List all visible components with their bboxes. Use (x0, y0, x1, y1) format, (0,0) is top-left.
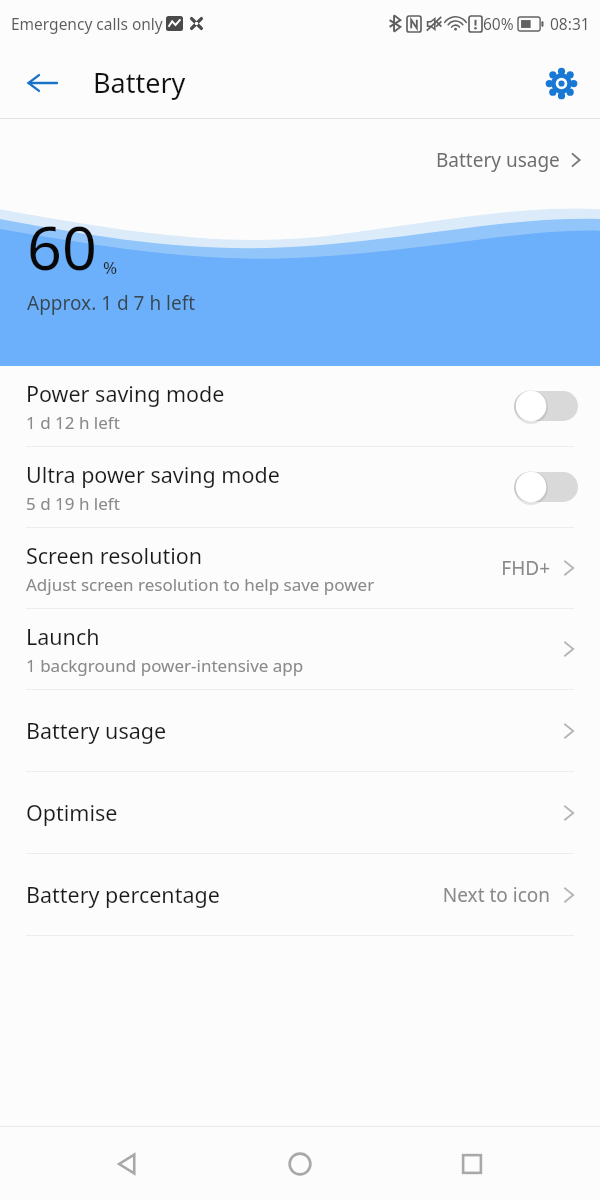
staticText: 08:31 (550, 13, 590, 34)
staticText: Next to icon (442, 882, 550, 908)
staticText: Approx. 1 d 7 h left (27, 290, 196, 316)
staticText: Power saving mode (26, 379, 225, 408)
button[interactable]: Toggle (514, 389, 578, 423)
staticText: Launch (26, 622, 100, 651)
staticText: Battery percentage (26, 880, 220, 909)
button[interactable]: Battery usage (418, 137, 600, 183)
staticText: Emergency calls only (11, 13, 163, 34)
staticText: 1 background power-intensive app (26, 654, 304, 677)
button[interactable]: Home (256, 1127, 344, 1200)
button[interactable]: Screen resolution (0, 528, 600, 608)
staticText: Optimise (26, 798, 118, 827)
button[interactable]: Launch (0, 609, 600, 689)
staticText: 1 d 12 h left (26, 411, 120, 434)
button[interactable]: Ultra power saving mode (0, 447, 600, 527)
button[interactable]: Toggle (514, 470, 578, 504)
staticText: % (103, 256, 118, 279)
button[interactable]: Recent apps (428, 1127, 516, 1200)
staticText: 5 d 19 h left (26, 492, 120, 515)
staticText: Battery usage (436, 147, 560, 173)
staticText: Ultra power saving mode (26, 460, 280, 489)
staticText: Battery usage (26, 716, 167, 745)
button[interactable]: Battery usage (0, 690, 600, 771)
button[interactable]: Settings (534, 56, 588, 110)
staticText: 60% (483, 13, 514, 34)
staticText: Adjust screen resolution to help save po… (26, 573, 375, 596)
button[interactable]: Optimise (0, 772, 600, 853)
button[interactable]: Back (84, 1127, 172, 1200)
button[interactable]: Power saving mode (0, 366, 600, 446)
staticText: Battery (93, 64, 186, 101)
staticText: Screen resolution (26, 541, 203, 570)
staticText: 60 (27, 205, 97, 288)
button[interactable]: Battery percentage (0, 854, 600, 935)
staticText: FHD+ (501, 555, 550, 581)
button[interactable]: Back (14, 55, 70, 111)
